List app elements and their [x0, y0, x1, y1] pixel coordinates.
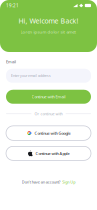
staticText: Loren ipsum dolor sit amet — [20, 29, 76, 35]
button[interactable]: Continue with Apple — [6, 146, 91, 160]
staticText: Sign Up — [62, 179, 75, 185]
staticText: Enter your email address — [11, 73, 51, 78]
staticText: Or continue with — [34, 111, 62, 116]
staticText: Don't have an account? — [22, 179, 61, 185]
staticText: Email — [6, 59, 16, 64]
staticText: Continue with Apple — [35, 151, 69, 156]
button[interactable]: Continue with Email — [6, 90, 91, 104]
staticText: Continue with Google — [34, 130, 70, 136]
button[interactable]: Sign Up — [62, 179, 75, 185]
staticText: 19:21 — [6, 2, 19, 9]
staticText: Hi, Welcome Back! — [18, 16, 78, 25]
staticText: Continue with Email — [31, 94, 65, 99]
button[interactable]: Continue with Google — [6, 126, 91, 140]
